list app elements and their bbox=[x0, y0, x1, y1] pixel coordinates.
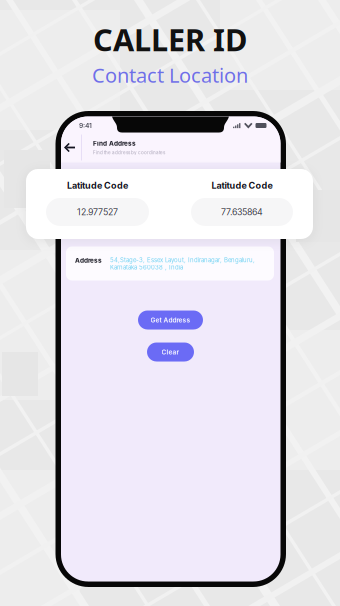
staticText: 12.977527 bbox=[77, 207, 118, 217]
staticText: 77.635864 bbox=[221, 207, 263, 217]
staticText: Clear bbox=[161, 348, 179, 356]
button[interactable]: Get Address bbox=[138, 310, 203, 329]
button[interactable]: Clear bbox=[147, 342, 194, 361]
staticText: Latitude Code bbox=[211, 180, 272, 191]
staticText: Find Address bbox=[93, 140, 136, 147]
staticText: Latitude Code bbox=[67, 180, 128, 191]
staticText: Contact Location bbox=[92, 62, 248, 88]
staticText: Find the address by coordinates bbox=[93, 150, 165, 155]
button[interactable]: Back bbox=[62, 137, 81, 158]
staticText: CALLER ID bbox=[93, 19, 247, 60]
staticText: 9:41 bbox=[79, 121, 92, 130]
staticText: Address bbox=[75, 256, 102, 264]
staticText: Get Address bbox=[150, 316, 190, 324]
staticText: 54,Stage-3, Essex Layout, Indiranagar, B… bbox=[110, 256, 255, 271]
